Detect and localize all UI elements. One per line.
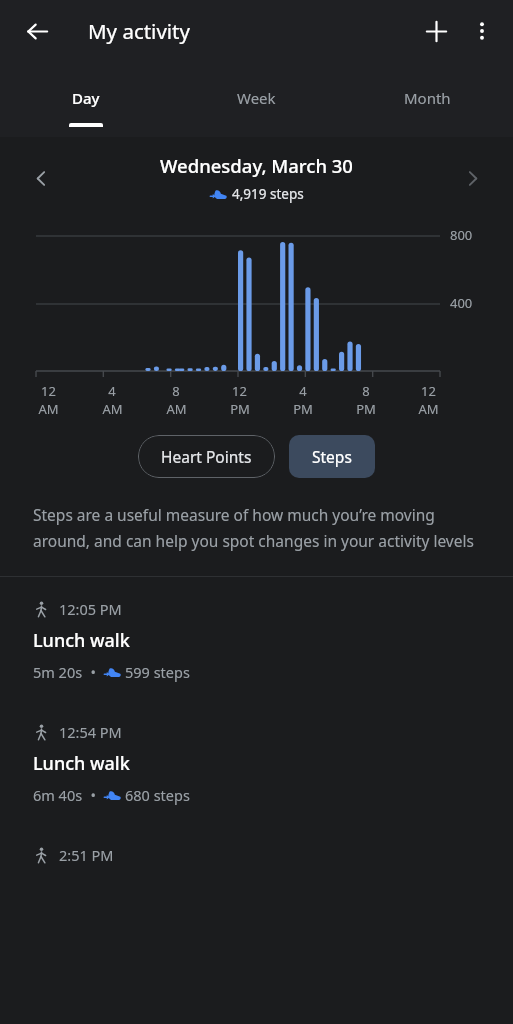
staticText: 4,919 steps: [232, 185, 304, 203]
staticText: 4: [299, 382, 307, 400]
button[interactable]: Back: [14, 8, 60, 54]
staticText: Lunch walk: [33, 751, 130, 776]
staticText: 5m 20s: [33, 662, 83, 682]
staticText: My activity: [88, 17, 190, 45]
staticText: PM: [356, 400, 376, 418]
staticText: 2:51 PM: [59, 845, 114, 865]
staticText: •: [83, 662, 104, 682]
staticText: •: [83, 785, 104, 805]
staticText: 800: [450, 226, 473, 244]
button[interactable]: 12:54 PM: [0, 700, 513, 823]
button[interactable]: Add: [413, 8, 459, 54]
staticText: AM: [166, 400, 187, 418]
staticText: Day: [72, 88, 100, 108]
staticText: Steps are a useful measure of how much y…: [33, 504, 480, 552]
staticText: 400: [450, 294, 473, 312]
staticText: 4: [108, 382, 116, 400]
staticText: AM: [418, 400, 439, 418]
button[interactable]: More options: [459, 8, 505, 54]
staticText: 12: [232, 382, 247, 400]
staticText: Heart Points: [161, 446, 252, 467]
staticText: Lunch walk: [33, 628, 130, 653]
staticText: Steps: [312, 446, 352, 467]
staticText: Wednesday, March 30: [160, 153, 353, 178]
staticText: 680 steps: [125, 785, 190, 805]
staticText: 599 steps: [125, 662, 190, 682]
staticText: 12: [41, 382, 56, 400]
button[interactable]: Month: [342, 62, 513, 137]
button[interactable]: Next day: [453, 159, 491, 197]
staticText: AM: [38, 400, 59, 418]
staticText: Week: [237, 88, 276, 108]
button[interactable]: Previous day: [22, 159, 60, 197]
button[interactable]: Heart Points: [138, 435, 275, 478]
button[interactable]: 12:05 PM: [0, 577, 513, 700]
staticText: PM: [293, 400, 313, 418]
staticText: 8: [362, 382, 370, 400]
staticText: 12:54 PM: [59, 722, 122, 742]
staticText: 12: [421, 382, 436, 400]
staticText: 6m 40s: [33, 785, 83, 805]
button[interactable]: Steps: [289, 435, 375, 478]
button[interactable]: Week: [171, 62, 342, 137]
button[interactable]: Day: [0, 62, 171, 137]
staticText: 8: [172, 382, 180, 400]
staticText: PM: [230, 400, 250, 418]
button[interactable]: 2:51 PM: [0, 823, 513, 865]
staticText: 12:05 PM: [59, 599, 122, 619]
staticText: AM: [102, 400, 123, 418]
staticText: Month: [404, 88, 451, 108]
